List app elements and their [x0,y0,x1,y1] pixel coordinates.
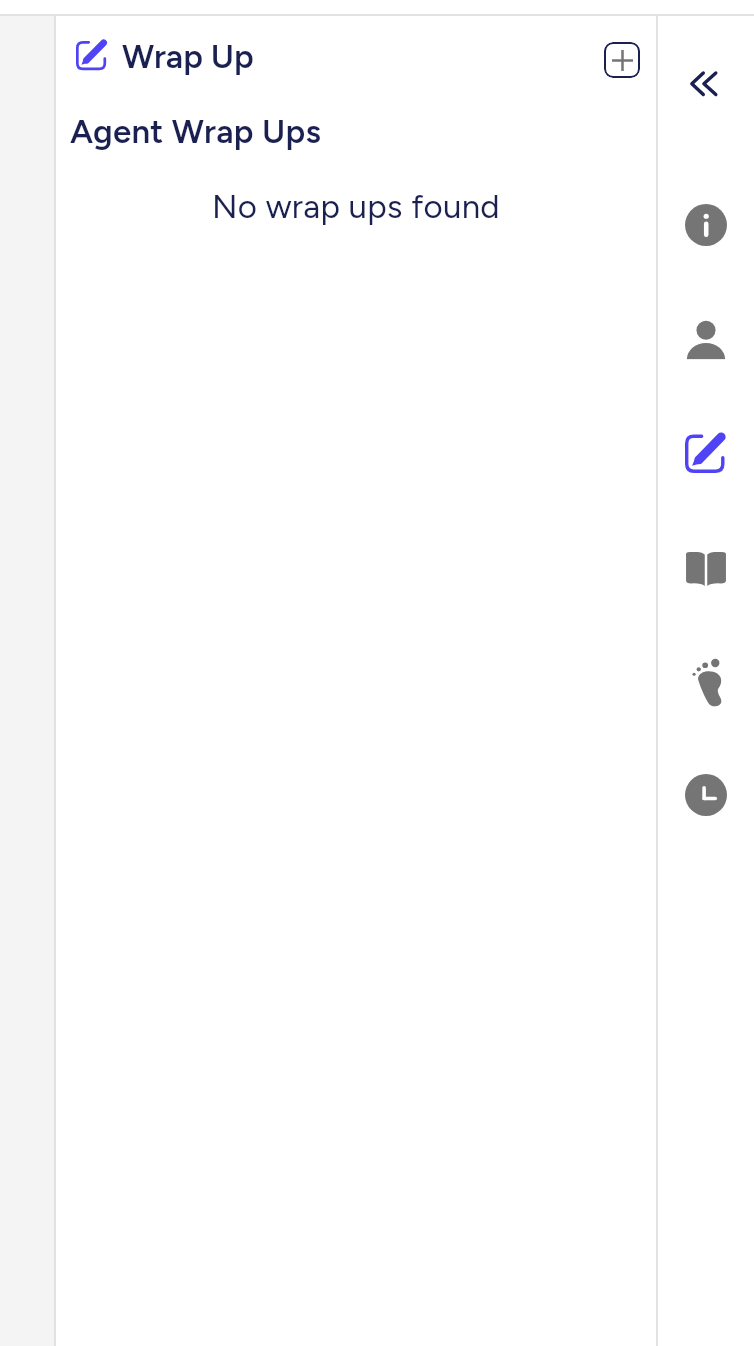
button[interactable]: Wrap up [76,39,108,71]
staticText: Agent Wrap Ups [70,112,322,152]
button[interactable]: Add wrap up [604,42,640,78]
button[interactable]: Information [678,197,734,253]
button[interactable]: Steps [678,654,734,710]
button[interactable]: Profile [678,312,734,368]
button[interactable]: Guide [678,539,734,595]
staticText: No wrap ups found [56,187,656,227]
button[interactable]: History [678,767,734,823]
staticText: Wrap Up [122,37,254,77]
button[interactable]: Wrap up [678,425,734,481]
button[interactable]: Collapse sidebar [678,56,734,112]
